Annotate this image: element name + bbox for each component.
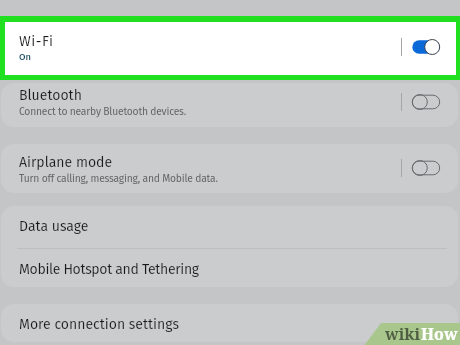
staticText: wiki — [385, 323, 421, 345]
staticText: Wi-Fi — [19, 33, 54, 50]
button[interactable] — [5, 22, 456, 75]
staticText: Data usage — [19, 218, 89, 235]
button[interactable] — [1, 83, 458, 127]
staticText: Bluetooth — [19, 87, 82, 104]
staticText: Mobile Hotspot and Tethering — [19, 261, 199, 278]
staticText: How — [421, 323, 458, 345]
staticText: Airplane mode — [19, 154, 113, 171]
staticText: Connect to nearby Bluetooth devices. — [19, 105, 186, 117]
button[interactable]: Airplane mode toggle — [411, 159, 441, 177]
staticText: Turn off calling, messaging, and Mobile … — [19, 172, 218, 184]
staticText: More connection settings — [19, 316, 179, 333]
button[interactable] — [1, 248, 458, 286]
staticText: On — [19, 51, 31, 62]
button[interactable] — [1, 206, 458, 248]
button[interactable]: Wi-Fi toggle — [411, 38, 441, 56]
button[interactable]: Bluetooth toggle — [411, 93, 441, 111]
button[interactable] — [1, 304, 458, 342]
button[interactable] — [1, 144, 458, 193]
